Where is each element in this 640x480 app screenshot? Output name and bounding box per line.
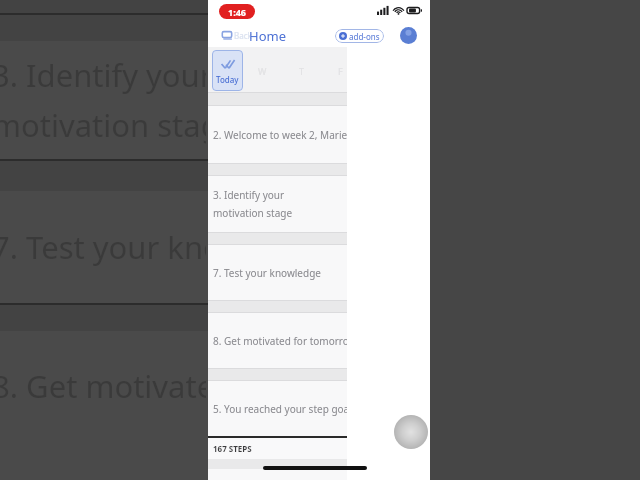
- staticText: 8. Get motivated for tomorrow: [213, 334, 347, 348]
- staticText: Today: [216, 74, 239, 85]
- button[interactable]: add-ons: [335, 29, 384, 43]
- staticText: Back: [234, 30, 252, 41]
- staticText: 7. Test your know: [0, 226, 206, 268]
- button[interactable]: 2. Welcome to week 2, Marie!: [208, 106, 347, 163]
- staticText: 3. Identify your: [213, 188, 285, 202]
- button[interactable]: 167 STEPS: [208, 438, 347, 459]
- button[interactable]: Do more: [208, 469, 347, 480]
- staticText: 167 STEPS: [213, 443, 252, 454]
- staticText: 7. Test your knowledge: [213, 266, 321, 280]
- button[interactable]: Today: [212, 50, 243, 91]
- staticText: Home: [249, 27, 286, 45]
- button[interactable]: 5. You reached your step goal: [208, 381, 347, 436]
- staticText: 2. Welcome to week 2, Marie!: [213, 128, 347, 142]
- staticText: motivation stage: [0, 104, 206, 146]
- button[interactable]: 7. Test your knowledge: [208, 245, 347, 300]
- staticText: W: [258, 65, 267, 77]
- staticText: 3. Identify your: [0, 54, 206, 96]
- staticText: 1:46: [228, 6, 246, 18]
- staticText: F: [338, 65, 343, 77]
- staticText: add-ons: [349, 31, 380, 42]
- button[interactable]: 8. Get motivated for tomorrow: [208, 313, 347, 368]
- button[interactable]: Back: [219, 27, 254, 44]
- button[interactable]: Touch indicator: [394, 415, 428, 449]
- staticText: motivation stage: [213, 206, 293, 220]
- staticText: 5. You reached your step goal: [213, 402, 347, 416]
- staticText: T: [299, 65, 305, 77]
- button[interactable]: 3. Identify your: [208, 176, 347, 232]
- staticText: 8. Get motivated: [0, 365, 206, 407]
- button[interactable]: Profile: [400, 27, 417, 44]
